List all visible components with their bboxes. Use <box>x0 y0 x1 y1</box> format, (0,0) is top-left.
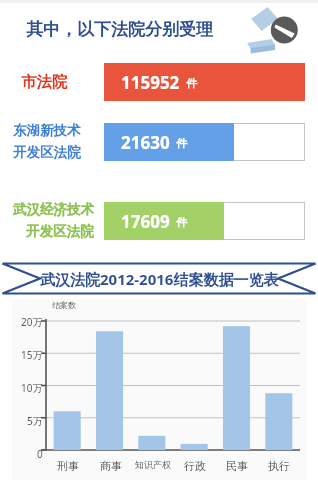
staticText: 件 <box>176 215 187 229</box>
button[interactable]: 武汉经济技术 <box>0 192 318 249</box>
staticText: 0 <box>37 447 43 461</box>
button[interactable]: 武汉法院2012-2016结案数据一览表 <box>0 261 318 296</box>
staticText: 开发区法院 <box>13 144 81 161</box>
other: Court gavel <box>246 5 304 55</box>
button[interactable]: 东湖新技术 <box>0 113 318 170</box>
button[interactable]: 市法院 <box>0 60 318 104</box>
staticText: 5万 <box>27 414 43 428</box>
staticText: 东湖新技术 <box>13 122 81 139</box>
staticText: 15万 <box>21 348 43 362</box>
staticText: 武汉经济技术 <box>13 201 94 218</box>
staticText: 17609 <box>121 210 170 233</box>
button[interactable]: 其中，以下法院分别受理 <box>0 3 318 56</box>
staticText: 行政 <box>184 459 206 473</box>
staticText: 执行 <box>268 459 290 473</box>
staticText: 件 <box>186 76 197 90</box>
staticText: 武汉法院2012-2016结案数据一览表 <box>40 269 279 289</box>
staticText: 民事 <box>226 459 248 473</box>
staticText: 115952 <box>121 71 180 94</box>
staticText: 结案数 <box>52 300 76 310</box>
staticText: 20万 <box>21 315 43 329</box>
staticText: 开发区法院 <box>26 223 94 240</box>
staticText: 其中，以下法院分别受理 <box>26 19 213 40</box>
staticText: 21630 <box>121 131 170 154</box>
staticText: 刑事 <box>57 459 79 473</box>
staticText: 件 <box>176 136 187 150</box>
staticText: 市法院 <box>21 72 68 92</box>
staticText: 10万 <box>21 381 43 395</box>
staticText: 商事 <box>100 459 122 473</box>
staticText: 知识产权 <box>135 459 171 470</box>
